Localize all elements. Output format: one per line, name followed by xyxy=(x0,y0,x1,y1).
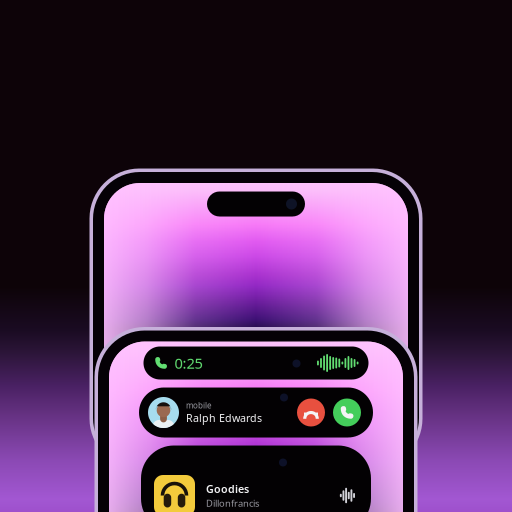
button[interactable]: 0:25 xyxy=(143,346,368,379)
button[interactable]: mobile xyxy=(139,387,373,437)
button[interactable]: Decline call xyxy=(297,398,325,426)
staticText: mobile xyxy=(186,400,212,411)
button[interactable]: Answer call xyxy=(333,398,361,426)
staticText: Goodies xyxy=(206,482,249,496)
button[interactable]: Goodies xyxy=(141,445,371,512)
staticText: Dillonfrancis xyxy=(206,497,259,509)
staticText: Ralph Edwards xyxy=(186,411,262,425)
staticText: 0:25 xyxy=(174,353,202,373)
